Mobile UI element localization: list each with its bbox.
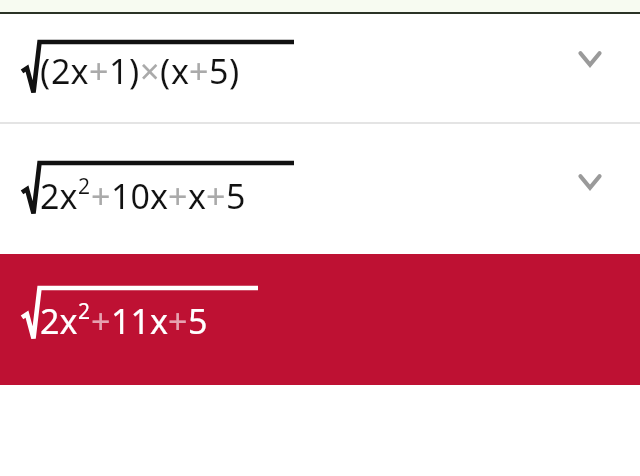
staticText: +	[168, 173, 188, 219]
button[interactable]: Expand step one	[573, 42, 607, 76]
staticText: 2	[78, 297, 91, 326]
staticText: 11x	[111, 298, 168, 344]
button[interactable]: Expand step two	[573, 165, 607, 199]
staticText: +	[91, 298, 111, 344]
staticText: x	[188, 173, 206, 219]
staticText: 10x	[111, 173, 168, 219]
staticText: 2x	[51, 48, 89, 94]
staticText: +	[168, 298, 188, 344]
staticText: 2x	[40, 173, 78, 219]
button[interactable]: 2x	[0, 254, 640, 385]
staticText: +	[89, 48, 109, 94]
staticText: )	[229, 48, 240, 94]
staticText: )	[129, 48, 140, 94]
staticText: (	[40, 48, 51, 94]
staticText: 2x	[40, 298, 78, 344]
button[interactable]: 2x	[0, 124, 640, 254]
staticText: 1	[109, 48, 129, 94]
staticText: x	[171, 48, 189, 94]
staticText: ×	[140, 48, 160, 94]
staticText: +	[189, 48, 209, 94]
button[interactable]: (	[0, 14, 640, 122]
staticText: 2	[78, 172, 91, 201]
staticText: 5	[209, 48, 229, 94]
staticText: (	[160, 48, 171, 94]
staticText: 5	[188, 298, 208, 344]
staticText: +	[91, 173, 111, 219]
staticText: 5	[226, 173, 246, 219]
staticText: +	[206, 173, 226, 219]
